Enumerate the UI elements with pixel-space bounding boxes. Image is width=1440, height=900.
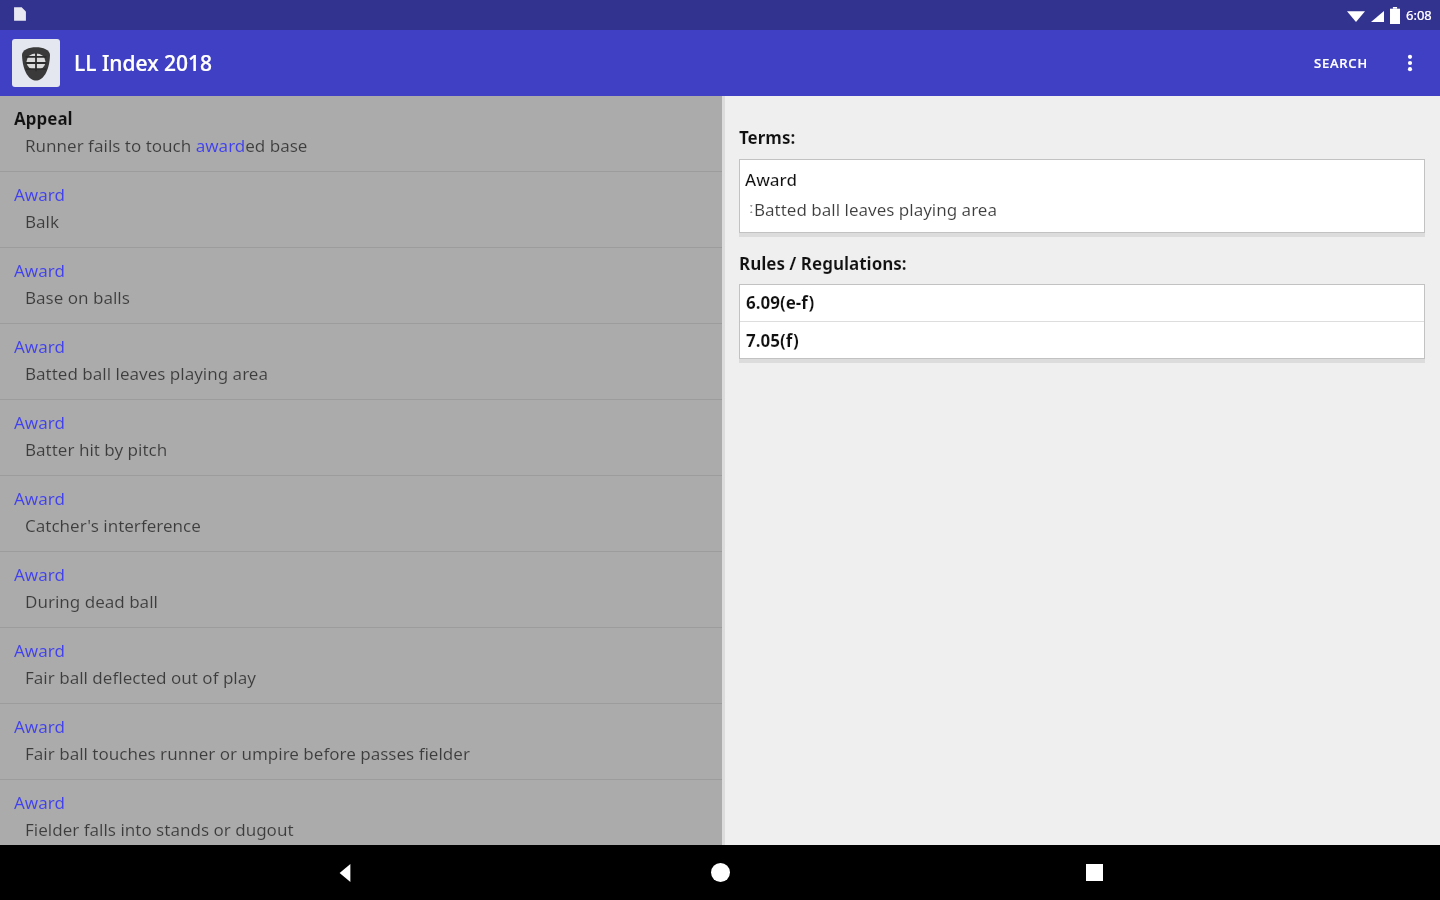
- button[interactable]: Recent apps: [1066, 845, 1122, 900]
- staticText: Award: [14, 639, 65, 662]
- button[interactable]: Award: [0, 476, 722, 551]
- staticText: Award: [14, 563, 65, 586]
- button[interactable]: Award: [0, 552, 722, 627]
- staticText: Fielder falls into stands or dugout: [25, 818, 294, 841]
- staticText: Batted ball leaves playing area: [25, 362, 268, 385]
- button[interactable]: Award: [0, 628, 722, 703]
- button[interactable]: Award: [0, 400, 722, 475]
- button[interactable]: Home: [692, 845, 748, 900]
- staticText: Runner fails to touch awarded base: [25, 134, 308, 157]
- staticText: Award: [14, 411, 65, 434]
- button[interactable]: 7.05(f): [739, 322, 1425, 359]
- button[interactable]: 6.09(e-f): [739, 284, 1425, 321]
- staticText: Terms:: [739, 126, 796, 149]
- button[interactable]: Award: [0, 324, 722, 399]
- staticText: 6.09(e-f): [746, 291, 815, 314]
- button[interactable]: Award: [0, 704, 722, 779]
- staticText: Appeal: [14, 107, 73, 130]
- staticText: Catcher's interference: [25, 514, 201, 537]
- staticText: Award: [14, 791, 65, 814]
- staticText: Balk: [25, 210, 60, 233]
- staticText: Rules / Regulations:: [739, 252, 907, 275]
- button[interactable]: Award: [0, 780, 722, 845]
- button[interactable]: Back: [318, 845, 374, 900]
- staticText: Award: [745, 168, 797, 191]
- button[interactable]: SEARCH: [1302, 42, 1380, 84]
- button[interactable]: Appeal: [0, 96, 722, 171]
- staticText: Base on balls: [25, 286, 130, 309]
- button[interactable]: Award: [0, 172, 722, 247]
- staticText: 6:08: [1406, 6, 1432, 24]
- staticText: 7.05(f): [746, 329, 799, 352]
- staticText: Award: [14, 183, 65, 206]
- staticText: Fair ball touches runner or umpire befor…: [25, 742, 470, 765]
- staticText: Award: [14, 715, 65, 738]
- staticText: SEARCH: [1314, 54, 1368, 72]
- button[interactable]: More options: [1388, 41, 1432, 85]
- staticText: Award: [14, 335, 65, 358]
- staticText: ː: [749, 198, 754, 217]
- staticText: During dead ball: [25, 590, 158, 613]
- button[interactable]: Award: [739, 159, 1425, 233]
- staticText: Batter hit by pitch: [25, 438, 168, 461]
- staticText: LL Index 2018: [74, 49, 213, 78]
- button[interactable]: Award: [0, 248, 722, 323]
- staticText: Award: [14, 487, 65, 510]
- staticText: Fair ball deflected out of play: [25, 666, 256, 689]
- button[interactable]: App icon: [12, 39, 60, 87]
- staticText: Batted ball leaves playing area: [754, 198, 997, 221]
- staticText: Award: [14, 259, 65, 282]
